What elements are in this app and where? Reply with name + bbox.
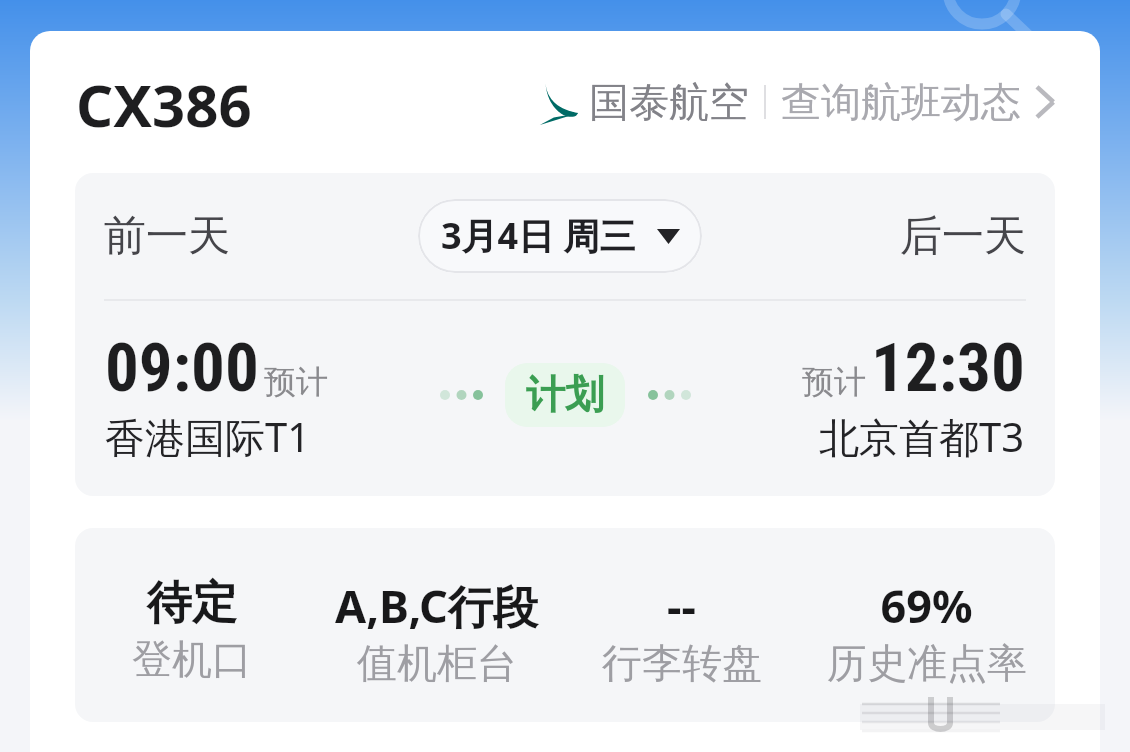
staticText: 3月4日 周三 (441, 211, 636, 260)
button[interactable]: 国泰航空 (539, 77, 1055, 127)
staticText: 预计 (802, 362, 866, 402)
staticText: 国泰航空 (589, 77, 749, 127)
button[interactable]: 69% (804, 575, 1049, 688)
staticText: 香港国际T1 (105, 409, 311, 464)
button[interactable]: 后一天 (900, 210, 1055, 263)
staticText: 值机柜台 (357, 638, 517, 688)
staticText: 计划 (526, 370, 604, 419)
staticText: 09:00 (105, 329, 259, 408)
staticText: 待定 (147, 575, 237, 632)
staticText: -- (667, 575, 696, 636)
other: 国泰航空 (539, 79, 579, 125)
button[interactable]: 前一天 (75, 210, 230, 263)
staticText: 69% (880, 575, 973, 636)
button[interactable]: 待定 (75, 575, 314, 684)
button[interactable]: 3月4日 周三 (418, 199, 702, 273)
staticText: 历史准点率 (827, 638, 1027, 688)
button[interactable]: A,B,C行段 (314, 575, 559, 688)
staticText: 12:30 (871, 329, 1025, 408)
staticText: A,B,C行段 (335, 575, 538, 636)
button[interactable]: 计划 (505, 363, 625, 427)
button[interactable]: CX386 (76, 65, 252, 144)
staticText: 北京首都T3 (819, 409, 1025, 464)
staticText: 查询航班动态 (781, 77, 1021, 127)
button[interactable]: -- (559, 575, 804, 688)
staticText: 预计 (264, 362, 328, 402)
staticText: 登机口 (132, 634, 252, 684)
other: 查询航班动态 (1035, 84, 1055, 120)
staticText: 行李转盘 (602, 638, 762, 688)
